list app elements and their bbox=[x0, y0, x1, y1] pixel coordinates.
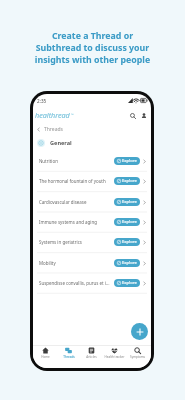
button[interactable]: Explore bbox=[117, 259, 137, 267]
button[interactable]: Cardiovascular disease bbox=[39, 192, 147, 212]
button[interactable]: Create thread bbox=[131, 323, 148, 340]
staticText: Health tracker bbox=[104, 355, 125, 359]
staticText: Nutrition bbox=[39, 158, 112, 164]
staticText: Cardiovascular disease bbox=[39, 199, 112, 205]
staticText: Explore bbox=[122, 178, 137, 184]
staticText: Threads bbox=[44, 126, 63, 133]
button[interactable]: Explore bbox=[117, 218, 137, 226]
button[interactable]: Explore bbox=[117, 238, 137, 246]
button[interactable]: Threads bbox=[36, 123, 151, 135]
button[interactable]: Articles bbox=[80, 346, 103, 368]
button[interactable]: Search bbox=[128, 111, 137, 120]
staticText: Articles bbox=[86, 355, 97, 359]
staticText: Suspendisse convallis, purus et in... bbox=[39, 280, 112, 286]
button[interactable]: Symptoms bbox=[126, 346, 149, 368]
staticText: Mobility bbox=[39, 260, 112, 266]
staticText: Explore bbox=[122, 239, 137, 245]
staticText: The hormonal fountain of youth bbox=[39, 178, 112, 184]
button[interactable]: Home bbox=[34, 346, 57, 368]
staticText: Explore bbox=[122, 158, 137, 164]
button[interactable]: Suspendisse convallis, purus et in... bbox=[39, 273, 147, 293]
button[interactable]: Explore bbox=[117, 279, 137, 287]
button[interactable]: Explore bbox=[117, 198, 137, 206]
staticText: Explore bbox=[122, 280, 137, 286]
staticText: ™ bbox=[71, 113, 74, 117]
button[interactable]: Systems in geriatrics bbox=[39, 232, 147, 252]
staticText: Explore bbox=[122, 199, 137, 205]
staticText: Systems in geriatrics bbox=[39, 239, 112, 245]
staticText: Immune systems and aging bbox=[39, 219, 112, 225]
staticText: Explore bbox=[122, 260, 137, 266]
staticText: Symptoms bbox=[130, 355, 145, 359]
staticText: Home bbox=[41, 355, 50, 359]
staticText: General bbox=[50, 139, 72, 147]
button[interactable]: Explore bbox=[117, 157, 137, 165]
staticText: Threads bbox=[63, 355, 75, 359]
button[interactable]: Threads bbox=[57, 346, 80, 368]
button[interactable]: Mobility bbox=[39, 253, 147, 273]
staticText: Create a Thread or Subthread to discuss … bbox=[0, 30, 185, 66]
button[interactable]: Immune systems and aging bbox=[39, 212, 147, 232]
button[interactable]: Nutrition bbox=[39, 151, 147, 171]
button[interactable]: The hormonal fountain of youth bbox=[39, 171, 147, 191]
button[interactable]: Profile bbox=[139, 111, 148, 120]
staticText: healthread bbox=[35, 110, 70, 120]
button[interactable]: Explore bbox=[117, 177, 137, 185]
staticText: 2:35 bbox=[37, 98, 47, 104]
staticText: Explore bbox=[122, 219, 137, 225]
button[interactable]: Health tracker bbox=[103, 346, 126, 368]
